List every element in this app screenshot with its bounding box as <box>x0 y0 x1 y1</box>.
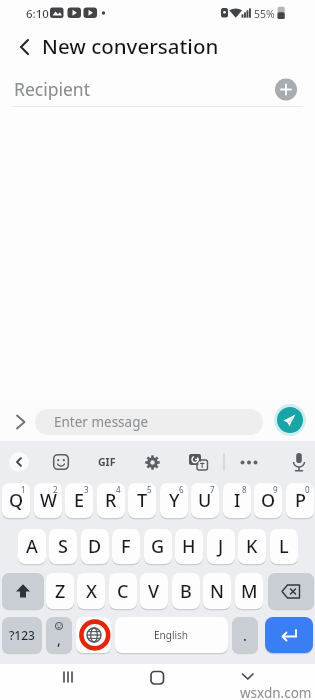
button[interactable] <box>144 664 170 690</box>
staticText: C <box>117 579 129 604</box>
button[interactable] <box>35 409 263 435</box>
staticText: Enter message <box>54 413 149 431</box>
button[interactable]: F <box>112 529 140 564</box>
button[interactable]: B <box>172 573 200 609</box>
button[interactable] <box>265 617 313 653</box>
button[interactable] <box>53 454 69 470</box>
button[interactable]: GIF <box>96 455 118 469</box>
button[interactable] <box>76 617 111 653</box>
staticText: O <box>261 488 276 513</box>
button[interactable]: K <box>238 529 266 564</box>
button[interactable]: X <box>77 573 105 609</box>
staticText: X <box>86 579 97 604</box>
button[interactable]: S <box>49 529 77 564</box>
button[interactable]: M <box>235 573 263 609</box>
staticText: V <box>148 579 160 604</box>
staticText: G <box>151 534 165 559</box>
button[interactable]: R <box>97 483 125 518</box>
staticText: P <box>295 488 306 513</box>
button[interactable] <box>9 452 29 472</box>
staticText: 6 <box>179 484 184 495</box>
staticText: 9 <box>273 484 278 495</box>
staticText: S <box>58 534 68 559</box>
button[interactable]: H <box>175 529 203 564</box>
button[interactable]: Recipient <box>0 68 315 107</box>
staticText: D <box>88 534 102 559</box>
staticText: 3 <box>84 484 89 495</box>
button[interactable]: N <box>203 573 231 609</box>
staticText: H <box>182 534 196 559</box>
button[interactable]: V <box>140 573 168 609</box>
staticText: 7 <box>210 484 215 495</box>
button[interactable]: E <box>65 483 93 518</box>
staticText: wsxdn.com <box>240 684 312 700</box>
button[interactable]: . <box>232 617 258 653</box>
staticText: GIF <box>98 455 116 469</box>
button[interactable]: G <box>144 529 172 564</box>
button[interactable]: P <box>286 483 314 518</box>
staticText: ?123 <box>9 627 35 643</box>
staticText: New conversation <box>42 32 219 60</box>
button[interactable] <box>8 32 38 62</box>
button[interactable]: T <box>128 483 156 518</box>
staticText: 4 <box>116 484 121 495</box>
button[interactable]: A <box>18 529 46 564</box>
staticText: M <box>241 579 258 604</box>
staticText: . <box>243 626 247 645</box>
staticText: Z <box>55 579 66 604</box>
staticText: 55% <box>254 7 275 21</box>
staticText: A <box>26 534 38 559</box>
staticText: B <box>180 579 192 604</box>
staticText: U <box>198 488 212 513</box>
staticText: N <box>210 579 224 604</box>
button[interactable] <box>55 664 81 690</box>
button[interactable]: I <box>223 483 251 518</box>
staticText: 0 <box>305 484 310 495</box>
staticText: R <box>105 488 117 513</box>
button[interactable]: C <box>109 573 137 609</box>
staticText: J <box>218 534 224 559</box>
staticText: T <box>137 488 148 513</box>
button[interactable] <box>2 573 44 609</box>
staticText: 5 <box>147 484 152 495</box>
staticText: , <box>57 630 61 649</box>
staticText: Recipient <box>14 77 90 101</box>
button[interactable] <box>144 454 161 471</box>
staticText: E <box>74 488 85 513</box>
staticText: Y <box>169 488 180 513</box>
staticText: 2 <box>53 484 58 495</box>
staticText: English <box>154 628 189 642</box>
button[interactable]: U <box>191 483 219 518</box>
button[interactable] <box>236 664 260 688</box>
staticText: 1 <box>21 484 26 495</box>
button[interactable] <box>268 573 314 609</box>
staticText: 6:10 <box>26 6 49 22</box>
button[interactable] <box>276 406 304 434</box>
button[interactable]: O <box>254 483 282 518</box>
button[interactable]: D <box>81 529 109 564</box>
staticText: F <box>121 534 131 559</box>
staticText: Q <box>9 488 24 513</box>
button[interactable]: L <box>270 529 298 564</box>
button[interactable]: Q <box>2 483 30 518</box>
button[interactable]: Z <box>46 573 74 609</box>
staticText: L <box>279 534 289 559</box>
staticText: W <box>40 488 57 513</box>
staticText: K <box>246 534 258 559</box>
button[interactable]: W <box>34 483 62 518</box>
button[interactable]: ?123 <box>2 617 42 653</box>
button[interactable] <box>189 453 209 472</box>
button[interactable]: Y <box>160 483 188 518</box>
button[interactable]: J <box>207 529 235 564</box>
button[interactable]: , <box>46 617 72 653</box>
button[interactable] <box>291 452 307 473</box>
button[interactable]: English <box>115 617 228 653</box>
staticText: 8 <box>242 484 247 495</box>
staticText: I <box>234 488 241 513</box>
